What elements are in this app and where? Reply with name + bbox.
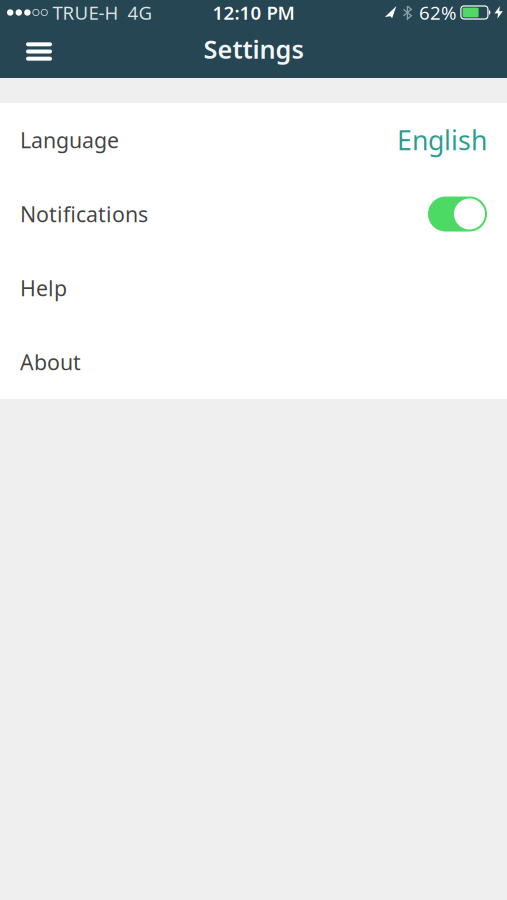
staticText: TRUE-H [52, 0, 118, 25]
button[interactable]: Notifications [428, 196, 487, 231]
staticText: Notifications [20, 200, 148, 228]
button[interactable]: Help [0, 251, 507, 325]
staticText: 4G [127, 0, 152, 25]
staticText: Language [20, 126, 119, 154]
staticText: 12:10 PM [212, 0, 294, 25]
button[interactable]: Menu [0, 34, 52, 69]
button[interactable]: Language [0, 103, 507, 177]
staticText: Help [20, 274, 67, 302]
staticText: About [20, 348, 81, 376]
staticText: Settings [203, 32, 303, 66]
staticText: English [397, 122, 487, 158]
button[interactable]: About [0, 325, 507, 399]
staticText: 62% [419, 0, 457, 25]
